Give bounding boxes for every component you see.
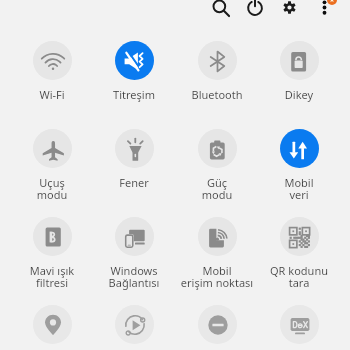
- button[interactable]: Settings: [274, 0, 304, 22]
- button[interactable]: Titreşim: [93, 41, 175, 121]
- staticText: Windows Bağlantısı: [93, 263, 175, 290]
- button[interactable]: Windows Bağlantısı: [93, 217, 175, 297]
- button[interactable]: Uçuş modu: [11, 129, 93, 209]
- staticText: Wi-Fi: [11, 87, 93, 102]
- button[interactable]: Güç modu: [176, 129, 258, 209]
- button[interactable]: QR kodunu tara: [258, 217, 340, 297]
- staticText: Güç modu: [176, 175, 258, 202]
- button[interactable]: More options: [309, 0, 339, 22]
- button[interactable]: Search: [206, 0, 236, 23]
- button[interactable]: Power off: [240, 0, 270, 23]
- button[interactable]: Dikey: [258, 41, 340, 121]
- button[interactable]: Bluetooth: [176, 41, 258, 121]
- staticText: Titreşim: [93, 87, 175, 102]
- button[interactable]: Wi-Fi: [11, 41, 93, 121]
- button[interactable]: Mobil erişim noktası: [176, 217, 258, 297]
- staticText: Fener: [93, 175, 175, 190]
- button[interactable]: Fener: [93, 129, 175, 209]
- staticText: Uçuş modu: [11, 175, 93, 202]
- button[interactable]: [258, 305, 340, 350]
- staticText: Mobil erişim noktası: [176, 263, 258, 290]
- button[interactable]: [11, 305, 93, 350]
- staticText: Bluetooth: [176, 87, 258, 102]
- staticText: Mavi ışık filtresi: [11, 263, 93, 290]
- button[interactable]: Mobil veri: [258, 129, 340, 209]
- button[interactable]: [176, 305, 258, 350]
- staticText: Dikey: [258, 87, 340, 102]
- button[interactable]: [93, 305, 175, 350]
- staticText: Mobil veri: [258, 175, 340, 202]
- staticText: QR kodunu tara: [258, 263, 340, 290]
- button[interactable]: Mavi ışık filtresi: [11, 217, 93, 297]
